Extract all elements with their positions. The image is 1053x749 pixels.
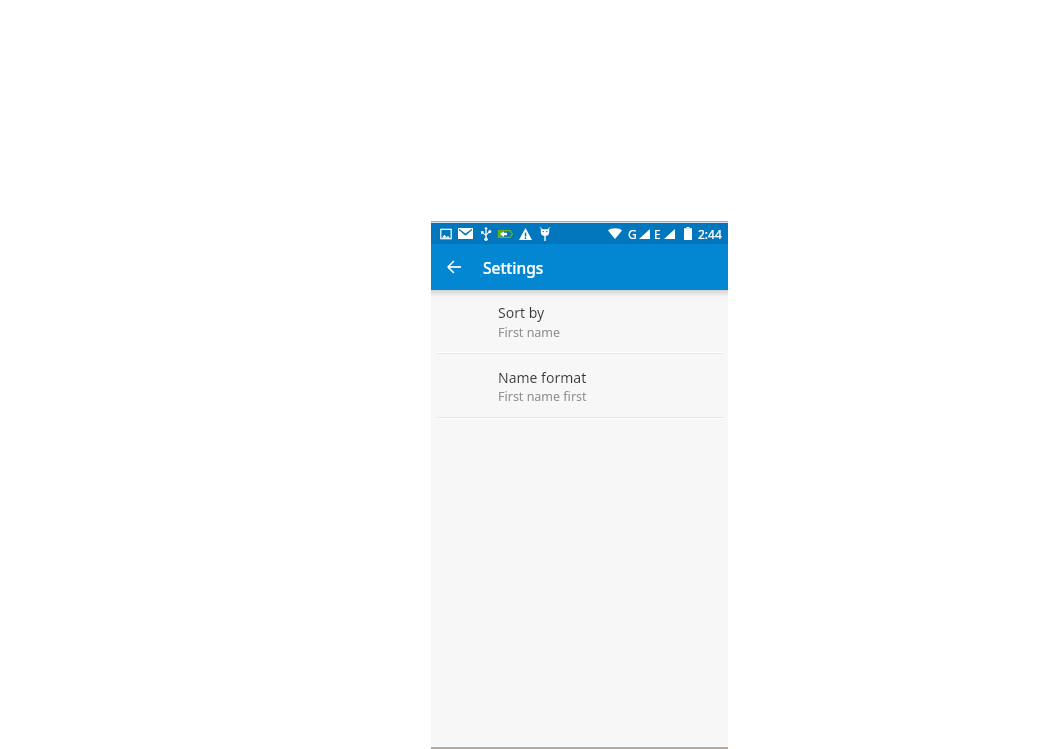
staticText: First name first: [498, 388, 587, 405]
staticText: First name: [498, 324, 561, 341]
button[interactable]: Sort by: [431, 290, 728, 352]
button[interactable]: Name format: [431, 354, 728, 417]
staticText: Settings: [483, 257, 544, 278]
staticText: 2:44: [698, 226, 722, 242]
button[interactable]: Navigate up: [431, 244, 477, 290]
staticText: E: [654, 226, 661, 242]
staticText: Name format: [498, 368, 587, 387]
staticText: G: [628, 226, 637, 242]
staticText: Sort by: [498, 303, 545, 322]
